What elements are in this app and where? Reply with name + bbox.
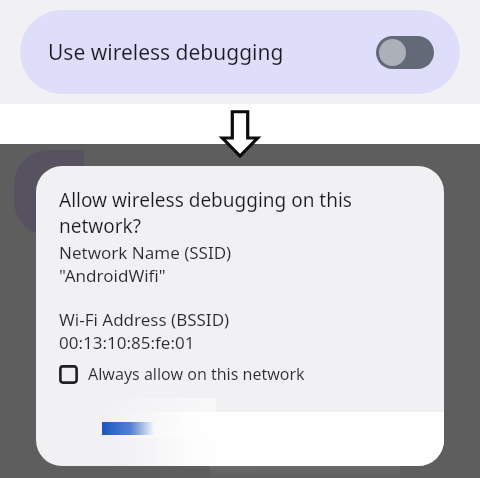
button[interactable]: Toggle wireless debugging <box>376 36 434 69</box>
staticText: Allow wireless debugging on this network… <box>59 187 424 238</box>
staticText: Always allow on this network <box>88 363 305 385</box>
staticText: Use wireless debugging <box>48 38 284 67</box>
staticText: 00:13:10:85:fe:01 <box>59 331 195 354</box>
staticText: Wi-Fi Address (BSSID) <box>59 308 230 331</box>
button[interactable]: Use wireless debugging <box>20 10 460 94</box>
staticText: Network Name (SSID) <box>59 241 232 264</box>
staticText: "AndroidWifi" <box>59 264 166 287</box>
button[interactable]: Always allow on this network <box>59 363 311 385</box>
